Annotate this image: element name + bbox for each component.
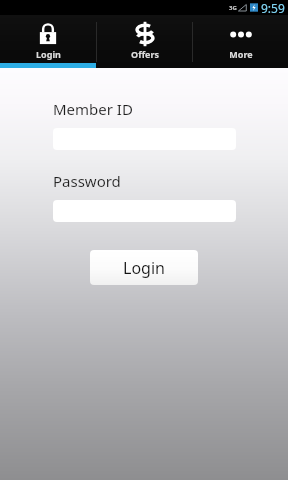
staticText: Login bbox=[36, 48, 61, 60]
staticText: 3G bbox=[229, 4, 237, 12]
button[interactable]: Login bbox=[0, 15, 96, 68]
staticText: Offers bbox=[131, 48, 159, 60]
staticText: Member ID bbox=[53, 99, 133, 119]
button[interactable]: Offers bbox=[97, 15, 192, 68]
staticText: More bbox=[229, 48, 253, 60]
staticText: 9:59 bbox=[261, 0, 285, 15]
staticText: Password bbox=[53, 171, 121, 191]
button[interactable]: More bbox=[193, 15, 288, 68]
button[interactable]: Login bbox=[90, 250, 198, 285]
staticText: Login bbox=[123, 257, 165, 279]
